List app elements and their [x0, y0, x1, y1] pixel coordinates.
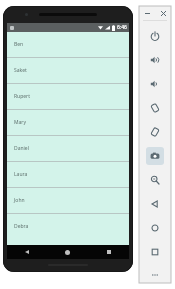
button[interactable]: Back: [146, 195, 164, 213]
button[interactable]: Rotate left: [146, 99, 164, 117]
button[interactable]: Close: [158, 8, 169, 19]
button[interactable]: Home: [146, 219, 164, 237]
button[interactable]: Laura: [7, 162, 129, 187]
button[interactable]: Overview: [146, 243, 164, 261]
button[interactable]: More: [146, 267, 164, 283]
button[interactable]: Volume up: [146, 51, 164, 69]
button[interactable]: Rupert: [7, 84, 129, 109]
staticText: Ben: [14, 41, 24, 48]
button[interactable]: Ben: [7, 32, 129, 57]
staticText: Laura: [14, 171, 28, 178]
staticText: John: [14, 197, 25, 204]
button[interactable]: Debra: [7, 214, 129, 239]
button[interactable]: John: [7, 188, 129, 213]
button[interactable]: Screenshot: [146, 147, 164, 165]
staticText: Rupert: [14, 93, 30, 100]
button[interactable]: Rotate right: [146, 123, 164, 141]
button[interactable]: Daniel: [7, 136, 129, 161]
staticText: Mary: [14, 119, 26, 126]
staticText: Debra: [14, 223, 29, 230]
staticText: Daniel: [14, 145, 29, 152]
staticText: 6:46: [117, 24, 127, 31]
button[interactable]: Recent apps: [88, 245, 129, 259]
button[interactable]: Home: [47, 245, 88, 259]
button[interactable]: Minimize: [142, 8, 153, 19]
button[interactable]: Power: [146, 27, 164, 45]
staticText: Saket: [14, 67, 27, 74]
button[interactable]: Volume down: [146, 75, 164, 93]
button[interactable]: Saket: [7, 58, 129, 83]
button[interactable]: Back: [7, 245, 47, 259]
button[interactable]: Zoom: [146, 171, 164, 189]
button[interactable]: Mary: [7, 110, 129, 135]
